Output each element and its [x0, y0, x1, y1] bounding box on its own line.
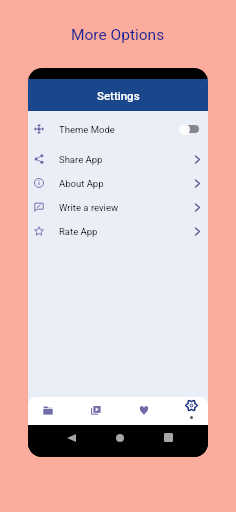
staticText: Write a review [59, 202, 119, 213]
button[interactable]: Theme Mode [28, 117, 208, 141]
button[interactable]: Share App [28, 147, 208, 171]
staticText: Share App [59, 154, 103, 165]
button[interactable]: Library [83, 397, 109, 425]
staticText: Theme Mode [59, 124, 115, 135]
button[interactable]: About App [28, 171, 208, 195]
button[interactable]: Folder [35, 397, 61, 425]
staticText: Settings [97, 89, 140, 102]
staticText: About App [59, 178, 104, 189]
button[interactable]: Rate App [28, 219, 208, 243]
button[interactable]: Settings [178, 397, 204, 425]
staticText: More Options [71, 26, 165, 44]
staticText: Rate App [59, 226, 98, 237]
button[interactable]: Write a review [28, 195, 208, 219]
button[interactable]: Favorites [131, 397, 157, 425]
